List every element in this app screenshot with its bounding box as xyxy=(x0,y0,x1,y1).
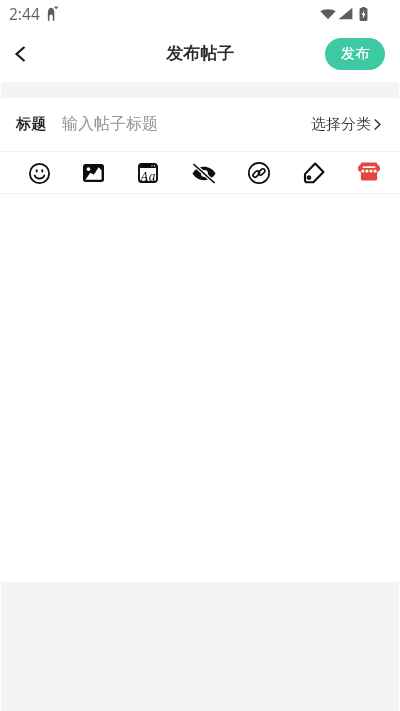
staticText: 输入帖子标题 xyxy=(62,114,158,134)
button[interactable]: Add tag xyxy=(296,155,332,191)
button[interactable]: 选择分类 xyxy=(311,109,381,140)
button[interactable]: Insert link xyxy=(241,155,277,191)
staticText: 标题 xyxy=(16,115,46,134)
staticText: Aa xyxy=(140,168,156,184)
staticText: 发布 xyxy=(341,45,369,63)
staticText: 发布帖子 xyxy=(166,43,234,64)
button[interactable]: Store xyxy=(351,155,387,191)
staticText: 选择分类 xyxy=(311,115,371,134)
button[interactable]: Emoji xyxy=(21,155,57,191)
button[interactable]: 发布 xyxy=(325,38,385,70)
button[interactable]: Hide content xyxy=(186,155,222,191)
button[interactable]: Text format xyxy=(130,155,166,191)
button[interactable]: Back xyxy=(5,40,35,70)
button[interactable]: 标题 xyxy=(16,106,158,142)
button[interactable]: Insert image xyxy=(75,155,111,191)
staticText: 2:44 xyxy=(9,3,40,24)
